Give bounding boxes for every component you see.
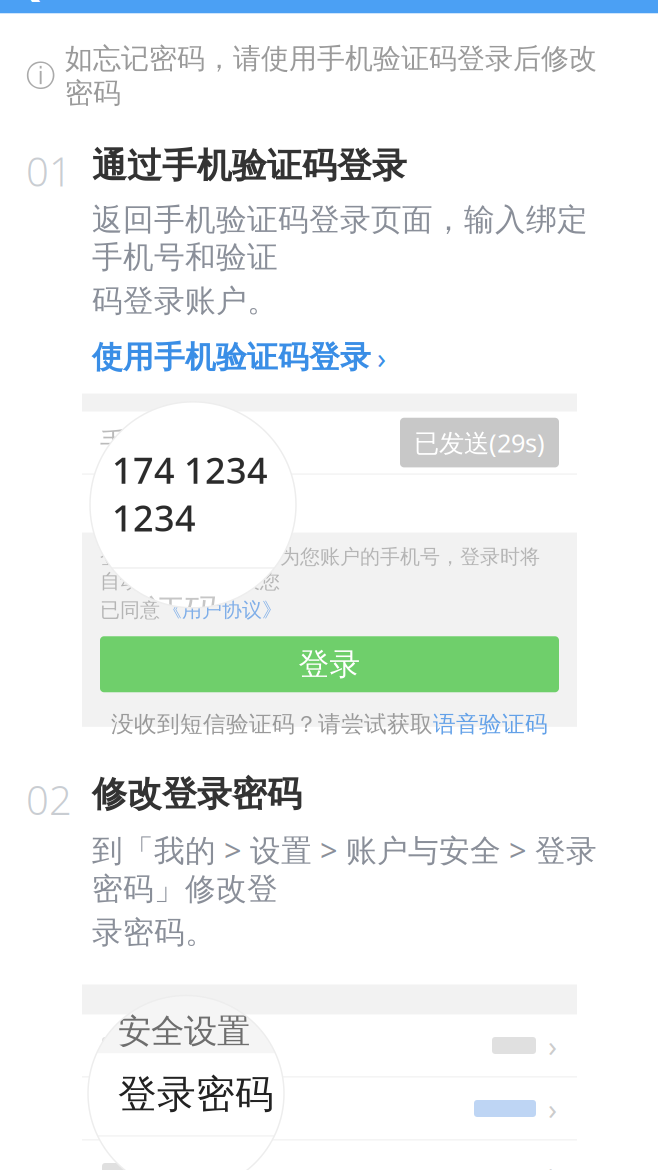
staticText: ⓘ [26,58,55,94]
staticText: 验证码 [112,590,220,635]
staticText: 码登录账户。 [92,282,278,320]
staticText: 修改登录密码 [92,773,302,815]
staticText: 已发送(29s) [414,426,545,459]
staticText: 登录即代表该手机号为您账户的手机号，登录时将自动注册，且代表您 [100,545,540,594]
staticText: 登录 [298,645,360,683]
staticText: 没收到短信验证码？请尝试获取 [111,710,433,738]
button[interactable]: 语音验证码 [433,710,548,738]
staticText: 到「我的 > 设置 > 账户与安全 > 登录密码」修改登 [92,829,597,908]
staticText: 返回手机验证码登录页面，输入绑定手机号和验证 [92,201,588,276]
button[interactable]: 使用手机验证码登录 [92,326,386,377]
staticText: ❮ [14,0,45,1]
staticText: 录密码。 [92,914,216,951]
staticText: › [548,1152,557,1170]
staticText: 已同意 [100,598,160,622]
staticText: 使用手机验证码登录 [92,338,371,376]
button[interactable]: 返回 [0,0,60,10]
button[interactable]: 登录 [100,636,559,692]
staticText: 通过手机验证码登录 [92,144,407,187]
staticText: 《用户协议》 [162,598,282,622]
staticText: 174 1234 1234 [112,446,268,541]
staticText: 语音验证码 [433,710,548,738]
staticText: › [377,338,386,377]
staticText: 如忘记密码，请使用手机验证码登录后修改密码 [65,41,597,110]
staticText: › [548,1089,557,1128]
staticText: 登录密码 [118,1071,274,1118]
staticText: › [548,1026,557,1065]
staticText: 安全设置 [118,1011,250,1052]
staticText: 02 [26,773,72,826]
staticText: 验证码 [100,487,181,520]
staticText: 01 [26,144,72,197]
staticText: 手机号 [100,426,181,459]
